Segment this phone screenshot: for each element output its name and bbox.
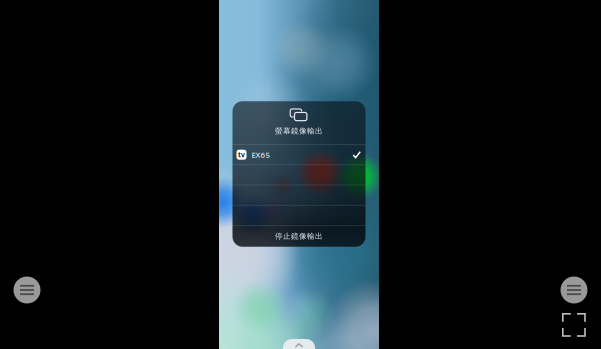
button[interactable]: 停止鏡像輸出 <box>232 226 365 247</box>
staticText: 停止鏡像輸出 <box>275 231 323 241</box>
staticText: 螢幕鏡像輸出 <box>275 126 323 136</box>
staticText: tv <box>238 150 245 159</box>
button[interactable]: tv <box>232 145 365 164</box>
button[interactable]: Playlist <box>13 276 40 303</box>
button[interactable]: Full screen <box>562 313 586 337</box>
staticText: EX65 <box>251 149 270 160</box>
button[interactable]: Playlist <box>560 276 587 303</box>
